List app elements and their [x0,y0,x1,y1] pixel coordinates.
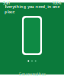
staticText: Everything you need, in one place [4,4,59,14]
staticText: 9:41 [3,0,10,6]
staticText: Get started free [18,71,45,77]
staticText: 100% [52,0,61,6]
